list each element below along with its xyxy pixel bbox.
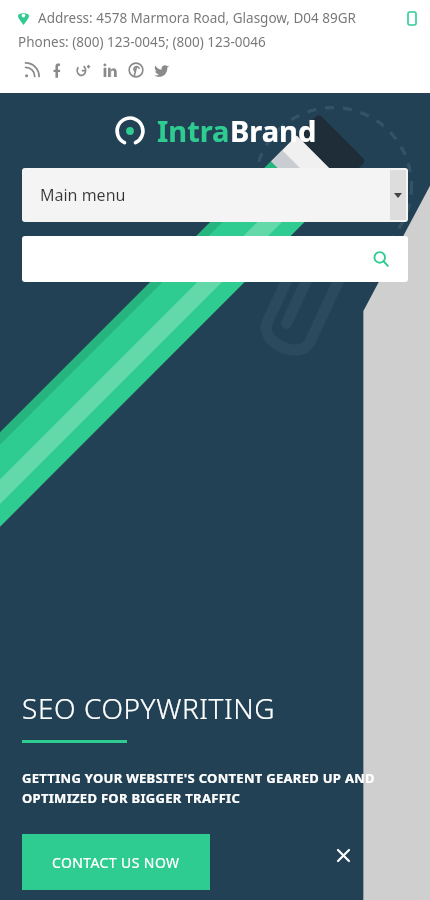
button[interactable]: Close	[328, 840, 358, 870]
staticText: Intra	[157, 111, 230, 150]
staticText: Phones: (800) 123-0045; (800) 123-0046	[18, 33, 266, 51]
button[interactable]: Main menu	[22, 168, 408, 222]
staticText: SEO COPYWRITING	[22, 689, 276, 727]
staticText: Address: 4578 Marmora Road, Glasgow, D04…	[38, 9, 356, 27]
button[interactable]: Twitter	[149, 59, 175, 81]
staticText: Main menu	[40, 184, 126, 206]
staticText: GETTING YOUR WEBSITE'S CONTENT GEARED UP…	[22, 769, 375, 807]
button[interactable]: Search	[368, 246, 394, 272]
button[interactable]: Facebook	[45, 59, 71, 81]
button[interactable]: RSS feed	[19, 59, 45, 81]
staticText: Brand	[230, 111, 317, 150]
button[interactable]: CONTACT US NOW	[22, 834, 210, 890]
button[interactable]: Intra	[22, 111, 408, 150]
button[interactable]: LinkedIn	[97, 59, 123, 81]
staticText: CONTACT US NOW	[52, 853, 180, 872]
button[interactable]: Pinterest	[123, 59, 149, 81]
button[interactable]: Search	[22, 236, 408, 282]
button[interactable]: Google Plus	[71, 59, 97, 81]
